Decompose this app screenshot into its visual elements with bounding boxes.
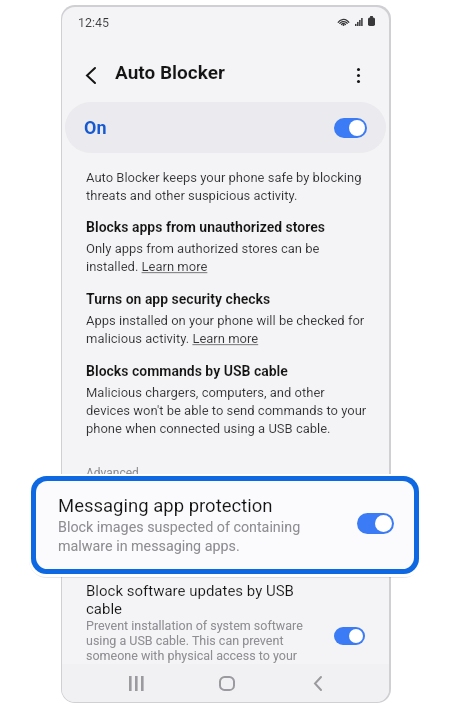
staticText: Messaging app protection (86, 503, 260, 521)
staticText: Apps installed on your phone will be che… (86, 313, 369, 347)
staticText: Only apps from authorized stores can be … (86, 241, 369, 275)
staticText: Malicious chargers, computers, and other… (86, 385, 369, 437)
button[interactable]: Back (296, 664, 340, 702)
staticText: Advanced (86, 466, 139, 480)
button[interactable]: On/off switch (334, 118, 367, 138)
button[interactable]: Recent apps (114, 664, 158, 702)
button[interactable]: Navigate up (74, 58, 108, 92)
button[interactable]: On/off switch (334, 627, 365, 645)
button[interactable]: Messaging app protection (36, 481, 414, 569)
button[interactable]: More options (341, 58, 375, 92)
staticText: 12:45 (78, 15, 110, 30)
button[interactable]: On/off switch (336, 520, 367, 538)
staticText: Messaging app protection (58, 495, 273, 517)
button[interactable]: Messaging app protection (62, 485, 389, 573)
staticText: On (84, 117, 107, 138)
staticText: Blocks commands by USB cable (86, 363, 288, 379)
button[interactable]: Block software updates by USB cable (62, 572, 389, 664)
staticText: Prevent installation of system software … (86, 618, 316, 663)
button[interactable]: Home (205, 664, 249, 702)
staticText: Turns on app security checks (86, 291, 271, 307)
staticText: Auto Blocker keeps your phone safe by bl… (86, 170, 369, 204)
button[interactable]: On (65, 102, 386, 153)
staticText: Block images suspected of containing mal… (58, 519, 313, 554)
staticText: Block images suspected of containing mal… (86, 521, 316, 553)
staticText: Block software updates by USB cable (86, 582, 316, 618)
staticText: Blocks apps from unauthorized stores (86, 219, 326, 235)
staticText: Auto Blocker (115, 61, 225, 83)
button[interactable]: On/off switch (357, 513, 394, 534)
